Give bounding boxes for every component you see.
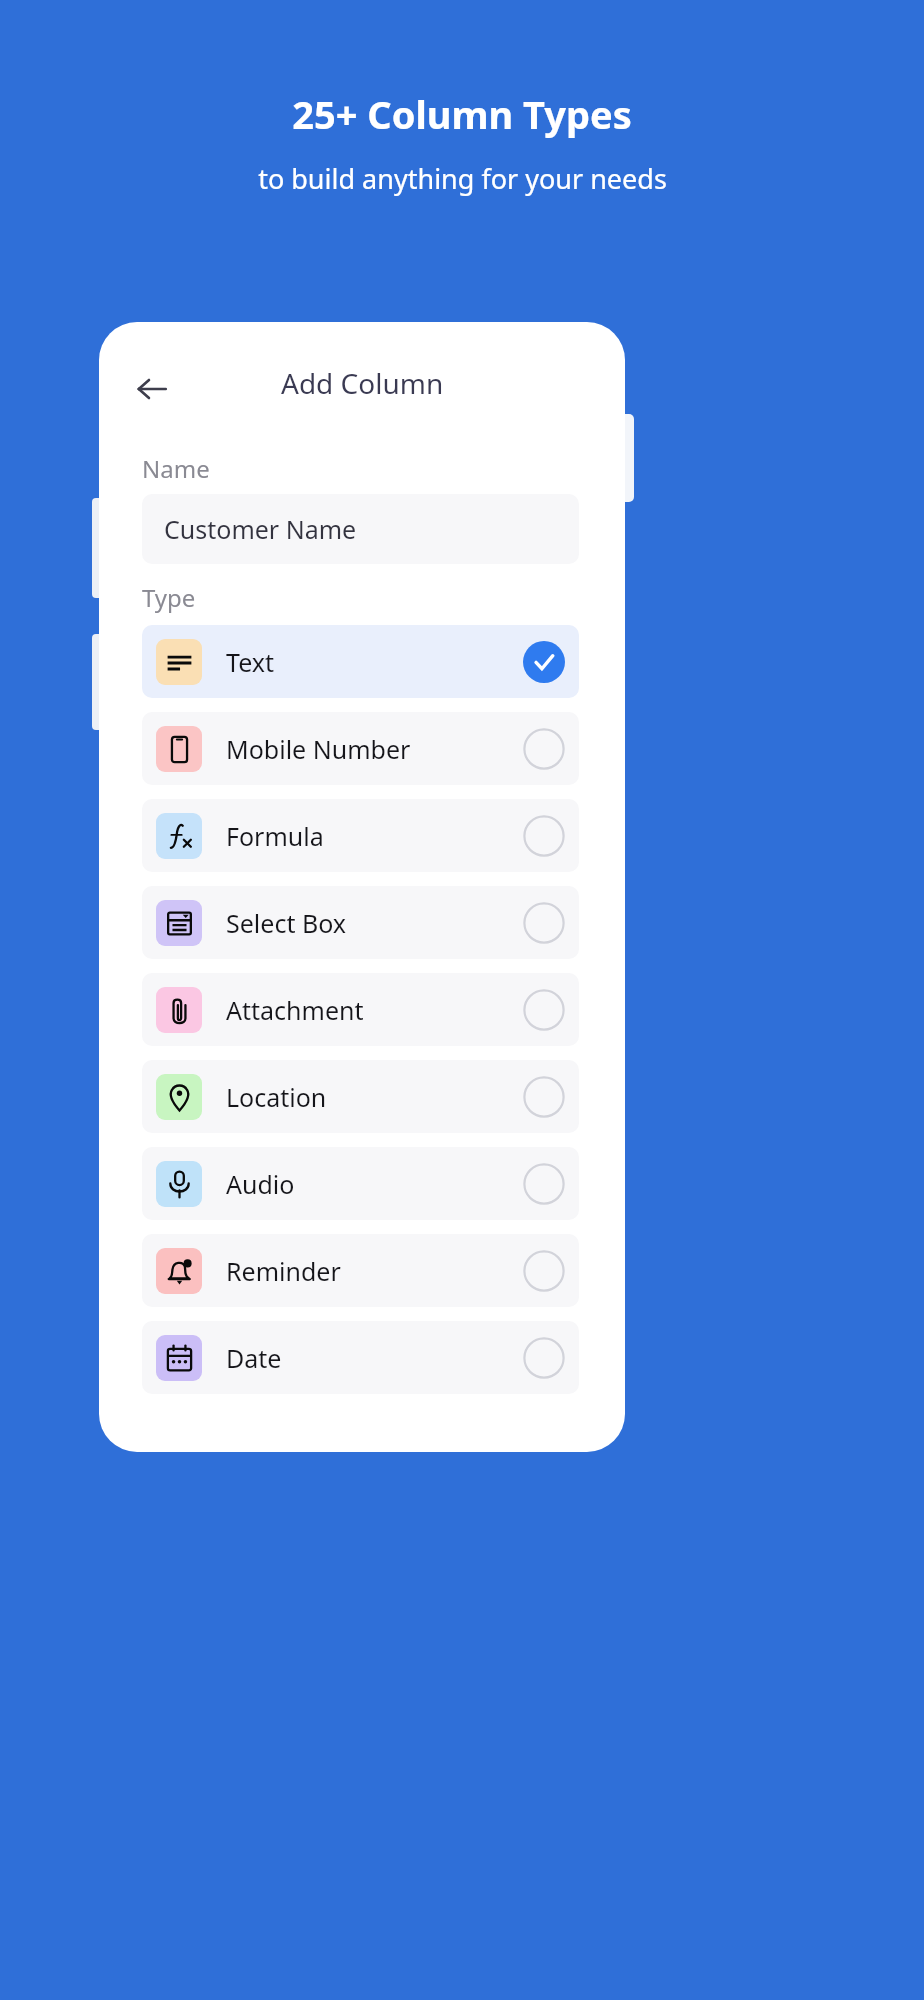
staticText: Customer Name [164,512,357,546]
button[interactable]: Text [142,625,579,698]
staticText: 25+ Column Types [292,88,632,140]
staticText: Text [226,645,275,679]
staticText: to build anything for your needs [258,160,667,197]
staticText: Select Box [226,906,347,940]
staticText: Date [226,1341,282,1375]
button[interactable]: Select Box [142,886,579,959]
staticText: Formula [226,819,324,853]
staticText: Reminder [226,1254,341,1288]
staticText: Location [226,1080,327,1114]
button[interactable]: Back [125,362,179,416]
staticText: Mobile Number [226,732,411,766]
staticText: Add Column [281,364,444,402]
button[interactable]: Reminder [142,1234,579,1307]
button[interactable]: Customer Name [142,494,579,564]
button[interactable]: Audio [142,1147,579,1220]
button[interactable]: Mobile Number [142,712,579,785]
button[interactable]: Attachment [142,973,579,1046]
staticText: Name [142,452,210,485]
staticText: Audio [226,1167,295,1201]
button[interactable]: Date [142,1321,579,1394]
button[interactable]: Location [142,1060,579,1133]
button[interactable]: Formula [142,799,579,872]
staticText: Attachment [226,993,364,1027]
staticText: Type [142,581,196,614]
